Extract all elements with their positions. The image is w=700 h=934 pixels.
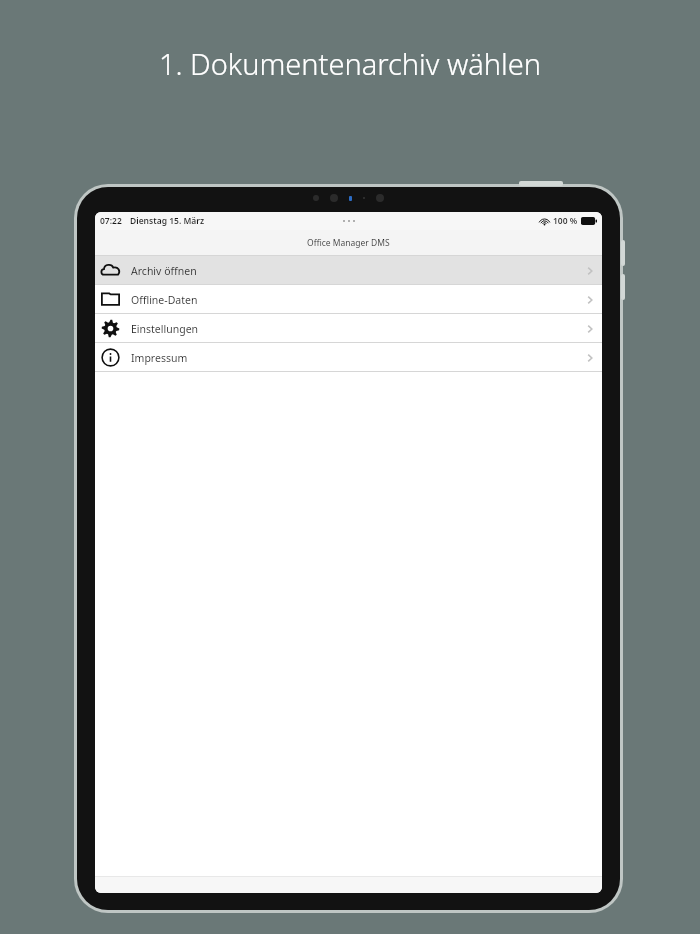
staticText: Impressum [131, 351, 188, 365]
staticText: 1. Dokumentenarchiv wählen [0, 44, 700, 83]
staticText: Office Manager DMS [307, 237, 390, 249]
staticText: 07:22 [100, 215, 122, 227]
button[interactable]: Offline-Daten [95, 285, 602, 314]
staticText: Archiv öffnen [131, 264, 197, 278]
button[interactable]: Archiv öffnen [95, 256, 602, 285]
button[interactable]: Einstellungen [95, 314, 602, 343]
staticText: 100 % [553, 215, 578, 227]
staticText: Offline-Daten [131, 293, 198, 307]
staticText: Einstellungen [131, 322, 199, 336]
button[interactable]: Impressum [95, 343, 602, 372]
staticText: Dienstag 15. März [130, 215, 205, 227]
